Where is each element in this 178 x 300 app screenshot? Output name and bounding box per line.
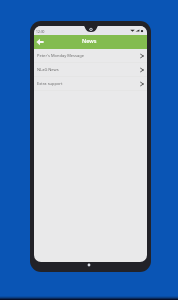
- staticText: Peter's Monday Message: [37, 53, 140, 58]
- button[interactable]: Peter's Monday Message: [34, 49, 147, 63]
- button[interactable]: Extra support: [34, 77, 147, 91]
- staticText: NLaG News: [37, 67, 140, 72]
- button[interactable]: NLaG News: [34, 63, 147, 77]
- staticText: Extra support: [37, 81, 140, 86]
- button[interactable]: Back: [35, 37, 45, 47]
- staticText: 12:30: [36, 29, 45, 33]
- staticText: News: [82, 37, 97, 44]
